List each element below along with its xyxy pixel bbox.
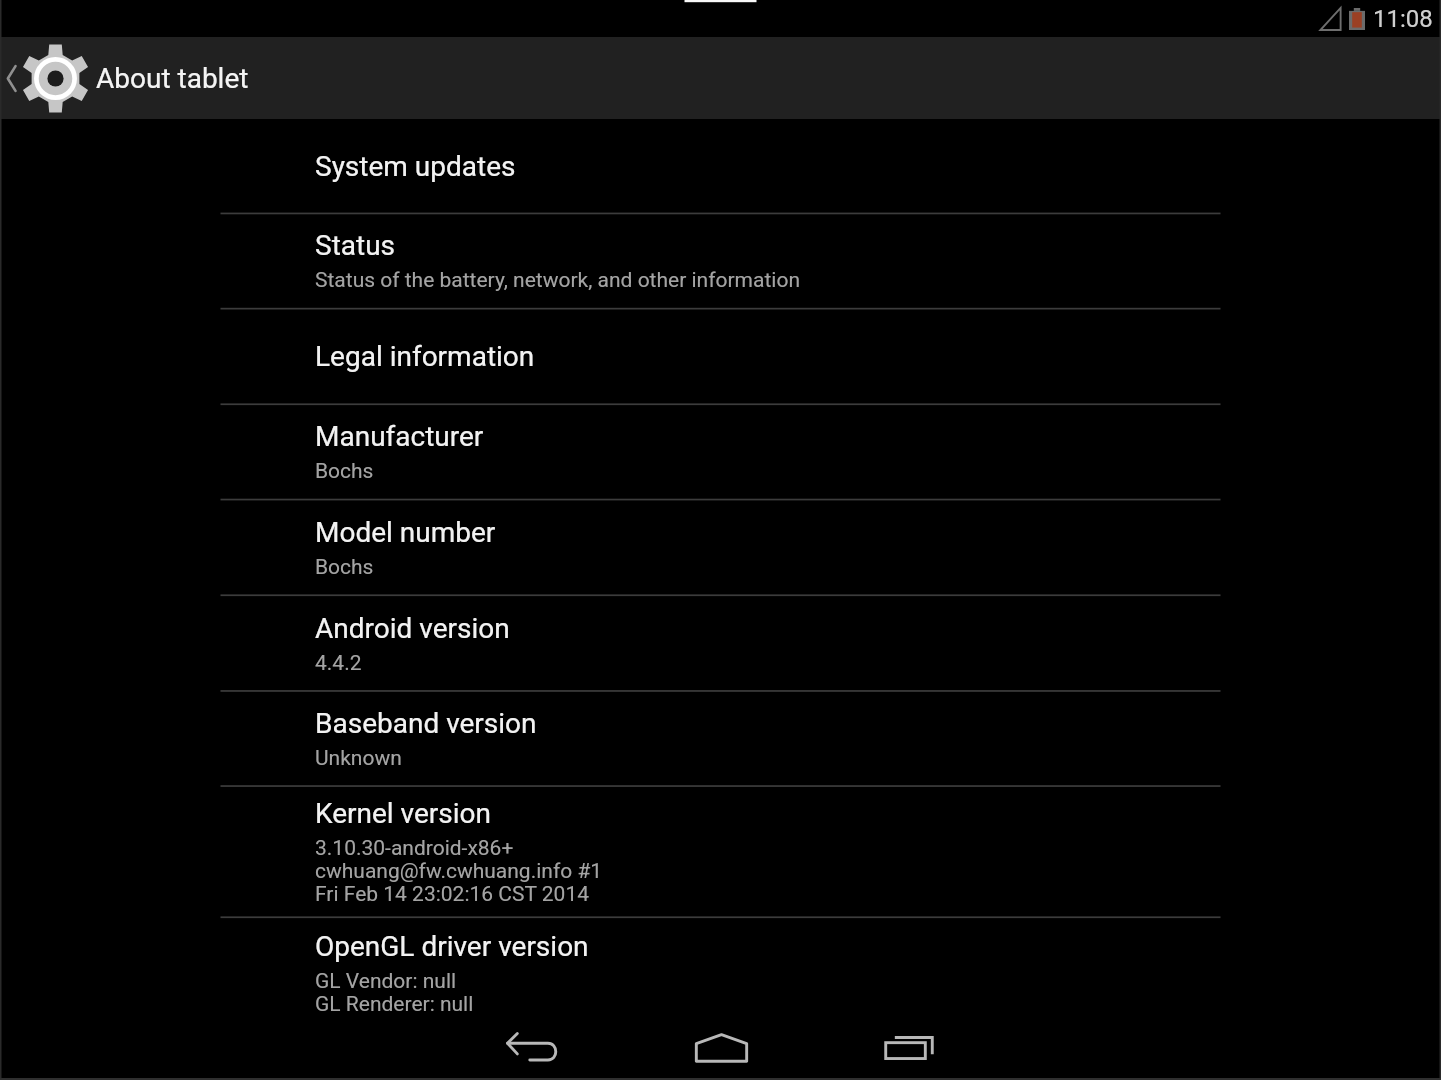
button[interactable]: Status	[221, 213, 1221, 308]
staticText: Baseband version	[315, 707, 537, 740]
staticText: Model number	[315, 516, 496, 549]
button[interactable]: Legal information	[221, 308, 1221, 404]
button[interactable]: About tablet	[0, 37, 263, 119]
staticText: Fri Feb 14 23:02:16 CST 2014	[315, 883, 589, 906]
staticText: About tablet	[96, 62, 249, 95]
staticText: Bochs	[315, 556, 374, 579]
staticText: 4.4.2	[315, 652, 362, 675]
staticText: System updates	[315, 150, 516, 183]
staticText: OpenGL driver version	[315, 930, 589, 963]
button[interactable]: Recent apps	[815, 1015, 1003, 1080]
staticText: GL Vendor: null	[315, 970, 457, 993]
button[interactable]: System updates	[221, 119, 1221, 213]
staticText: Status of the battery, network, and othe…	[315, 269, 800, 292]
staticText: Legal information	[315, 340, 535, 373]
staticText: Android version	[315, 612, 510, 645]
button[interactable]: OpenGL driver version	[221, 917, 1221, 1015]
staticText: Manufacturer	[315, 420, 484, 453]
button[interactable]: Back	[439, 1015, 627, 1080]
staticText: Status	[315, 229, 396, 262]
staticText: Unknown	[315, 747, 402, 770]
button[interactable]: Android version	[221, 595, 1221, 691]
staticText: Kernel version	[315, 797, 492, 830]
staticText: 3.10.30-android-x86+	[315, 837, 514, 860]
staticText: 11:08	[1373, 5, 1433, 33]
button[interactable]: Baseband version	[221, 691, 1221, 786]
button[interactable]: Manufacturer	[221, 404, 1221, 499]
staticText: Bochs	[315, 460, 374, 483]
staticText: cwhuang@fw.cwhuang.info #1	[315, 860, 603, 883]
button[interactable]: Kernel version	[221, 786, 1221, 917]
button[interactable]: Home	[627, 1015, 815, 1080]
button[interactable]: Model number	[221, 499, 1221, 595]
staticText: GL Renderer: null	[315, 993, 474, 1016]
